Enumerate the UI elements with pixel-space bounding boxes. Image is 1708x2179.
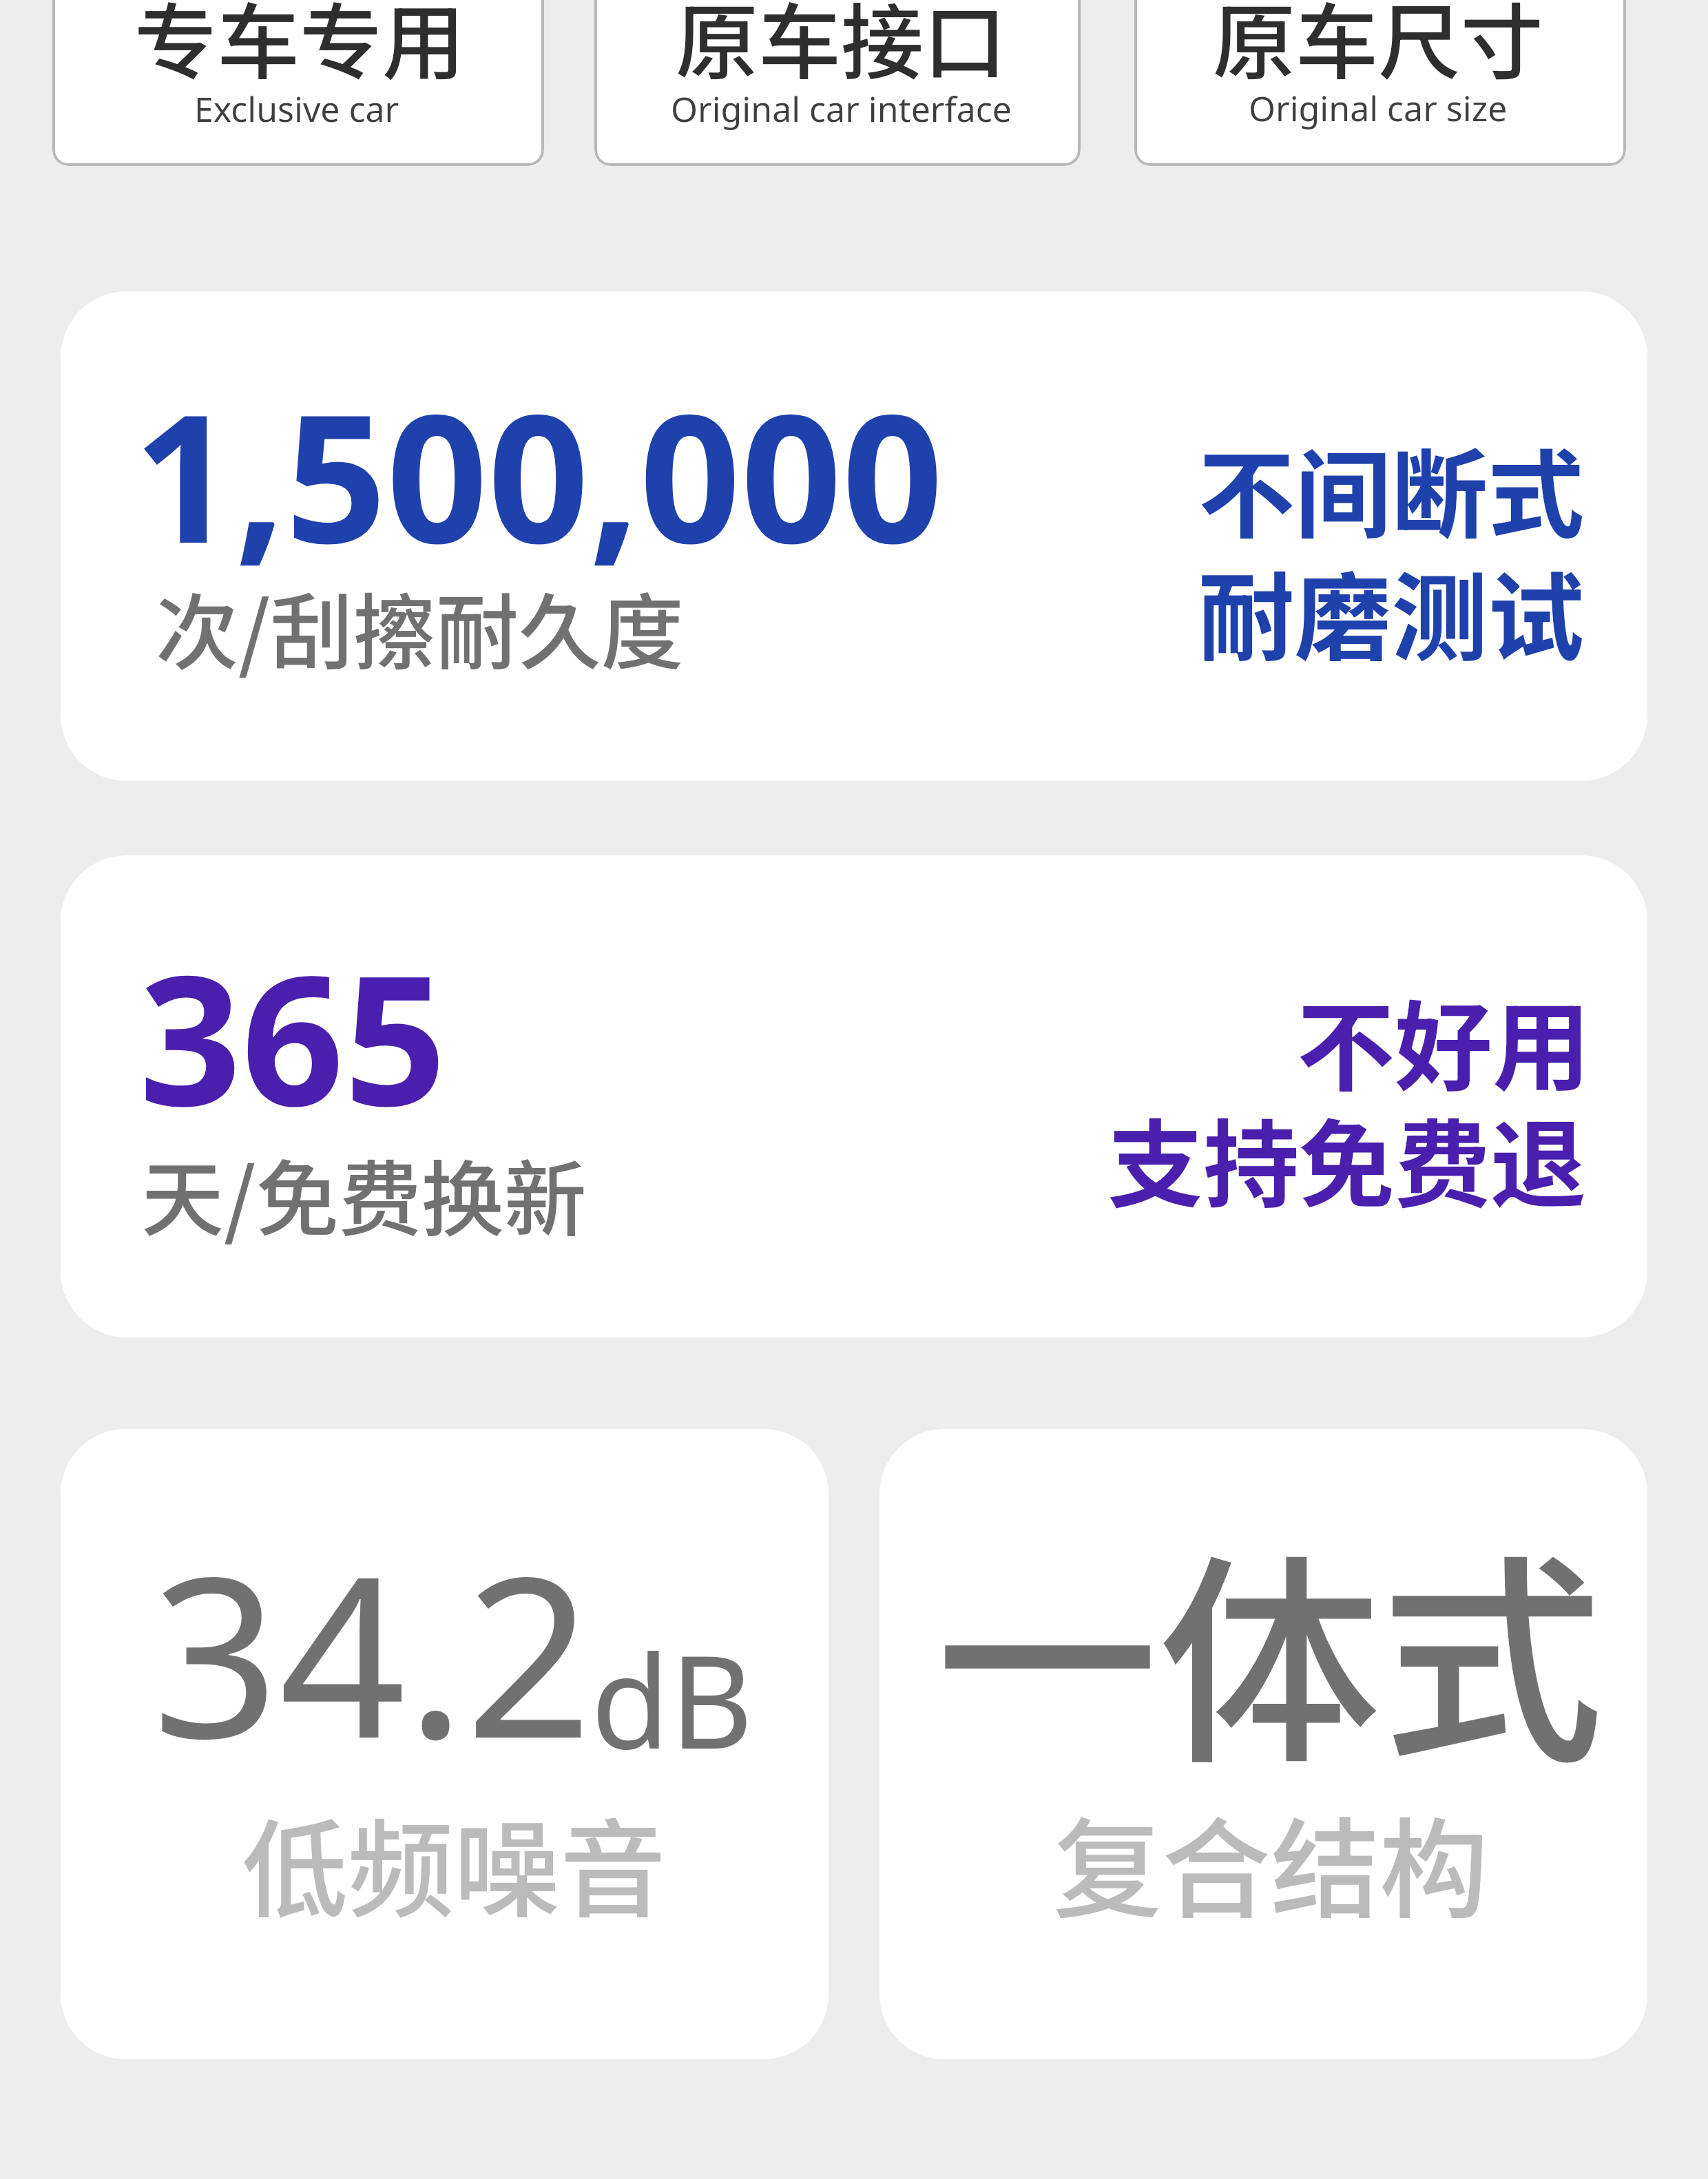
staticText: 不好用 xyxy=(1297,969,1590,1111)
staticText: 34.2 xyxy=(152,1501,592,1803)
staticText: 天/免费换新 xyxy=(141,1134,587,1253)
staticText: 不间断式 xyxy=(1198,419,1585,559)
staticText: dB xyxy=(591,1612,753,1786)
staticText: 1,500,000 xyxy=(134,353,944,594)
staticText: Original car size xyxy=(1249,85,1508,132)
staticText: 耐磨测试 xyxy=(1198,541,1585,681)
staticText: 原车接口 xyxy=(676,0,1006,96)
staticText: 一体式 xyxy=(936,1485,1603,1808)
button[interactable]: 专车专用 Exclusive car xyxy=(52,0,544,166)
staticText: 次/刮擦耐久度 xyxy=(156,567,684,687)
staticText: 支持免费退 xyxy=(1107,1089,1586,1227)
button[interactable]: 1,500,000 次刮擦耐久度 不间断式耐磨测试 xyxy=(61,291,1647,781)
button[interactable]: 原车尺寸 Original car size xyxy=(1134,0,1626,166)
staticText: 专车专用 xyxy=(134,0,465,96)
staticText: Exclusive car xyxy=(194,85,399,132)
button[interactable]: 一体式复合结构 xyxy=(879,1429,1647,2059)
button[interactable]: 原车接口 Original car interface xyxy=(594,0,1081,166)
button[interactable]: 34.2 dB 低频噪音 xyxy=(61,1429,829,2059)
staticText: 低频噪音 xyxy=(242,1785,667,1939)
staticText: Original car interface xyxy=(671,85,1012,132)
staticText: 复合结构 xyxy=(1053,1783,1488,1941)
staticText: 原车尺寸 xyxy=(1213,0,1543,96)
button[interactable]: 365 天免费换新 不好用支持免费退 xyxy=(61,855,1647,1337)
staticText: 365 xyxy=(139,914,447,1158)
